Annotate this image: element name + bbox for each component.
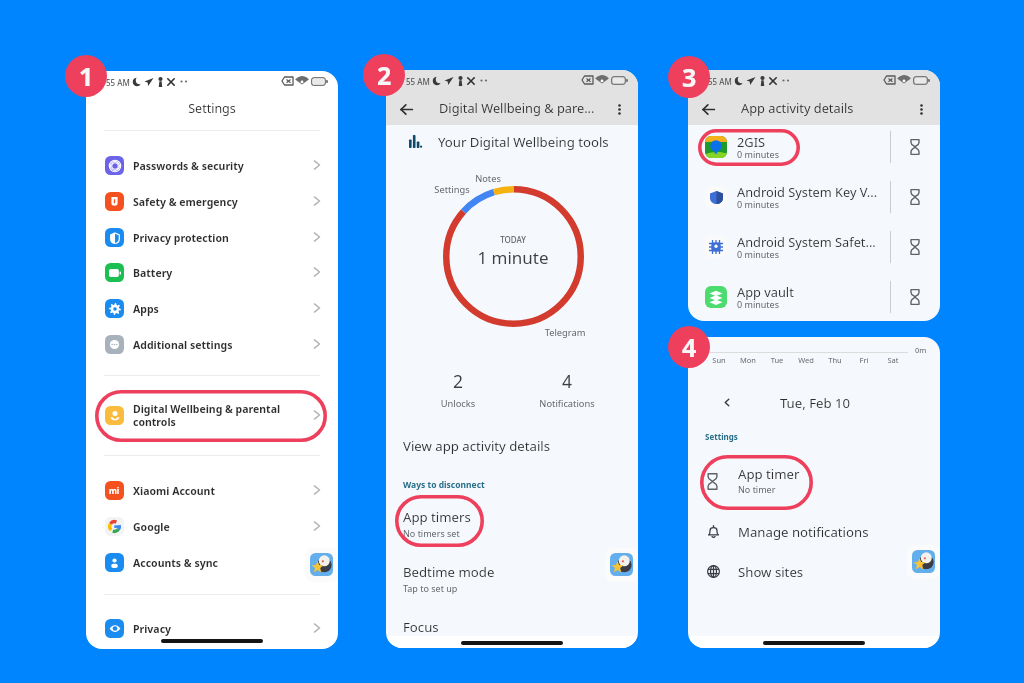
staticText: Tue, Feb 10 bbox=[755, 394, 875, 412]
staticText: 4 bbox=[527, 369, 607, 393]
other: App timer bbox=[910, 139, 920, 155]
staticText: App timers bbox=[403, 508, 471, 526]
button[interactable]: Digital Wellbeing & parental controls bbox=[86, 390, 338, 441]
staticText: View app activity details bbox=[403, 437, 551, 455]
staticText: Accounts & sync bbox=[133, 556, 218, 570]
staticText: Unlocks bbox=[418, 397, 498, 410]
other: App timer bbox=[707, 473, 718, 490]
staticText: Privacy bbox=[133, 622, 172, 636]
button[interactable]: Manage notifications bbox=[688, 517, 940, 549]
button[interactable]: Android System Safet... bbox=[688, 227, 940, 267]
staticText: Focus bbox=[403, 618, 439, 636]
staticText: 2 bbox=[377, 58, 392, 92]
button[interactable]: App timers bbox=[386, 505, 638, 545]
button[interactable]: Bedtime mode bbox=[386, 560, 638, 600]
button[interactable]: Accounts & sync bbox=[86, 548, 338, 576]
staticText: Apps bbox=[133, 302, 159, 316]
button[interactable]: App timer bbox=[688, 463, 940, 501]
staticText: Settings bbox=[705, 431, 738, 442]
staticText: Additional settings bbox=[133, 338, 233, 352]
staticText: TODAY bbox=[463, 234, 563, 245]
other: App timer bbox=[910, 289, 920, 305]
button[interactable]: Safety & emergency bbox=[86, 187, 338, 215]
staticText: Telegram bbox=[535, 326, 595, 339]
button[interactable]: Previous day bbox=[713, 388, 741, 416]
staticText: 3 bbox=[682, 60, 697, 94]
button[interactable]: App vault bbox=[688, 277, 940, 317]
staticText: 0 minutes bbox=[737, 298, 779, 310]
staticText: Your Digital Wellbeing tools bbox=[438, 133, 609, 151]
staticText: No timers set bbox=[403, 527, 460, 539]
button[interactable]: Privacy protection bbox=[86, 223, 338, 251]
staticText: 4 bbox=[682, 330, 697, 364]
staticText: Digital Wellbeing & parental controls bbox=[133, 402, 281, 429]
staticText: Mon bbox=[734, 355, 762, 365]
staticText: Digital Wellbeing & pare... bbox=[439, 99, 595, 116]
staticText: 2 bbox=[418, 369, 498, 393]
staticText: Battery bbox=[133, 266, 173, 280]
staticText: 1 minute bbox=[463, 246, 563, 269]
staticText: Google bbox=[133, 520, 170, 534]
staticText: Show sites bbox=[738, 563, 804, 581]
staticText: Manage notifications bbox=[738, 523, 869, 541]
button[interactable]: Back bbox=[693, 94, 724, 125]
staticText: Wed bbox=[792, 355, 820, 365]
staticText: Bedtime mode bbox=[403, 563, 495, 581]
staticText: Tap to set up bbox=[403, 582, 458, 594]
staticText: Fri bbox=[850, 355, 878, 365]
button[interactable]: Focus bbox=[386, 615, 638, 643]
staticText: Settings bbox=[422, 183, 482, 196]
staticText: 0 minutes bbox=[737, 198, 779, 210]
button[interactable]: Back bbox=[391, 94, 422, 125]
staticText: Settings bbox=[142, 100, 282, 117]
staticText: App vault bbox=[737, 283, 882, 300]
staticText: Notifications bbox=[527, 397, 607, 410]
staticText: Sat bbox=[879, 355, 907, 365]
staticText: Tue bbox=[763, 355, 791, 365]
button[interactable]: More options bbox=[604, 94, 635, 125]
staticText: Privacy protection bbox=[133, 231, 229, 245]
other: App timer bbox=[910, 239, 920, 255]
button[interactable]: Battery bbox=[86, 258, 338, 286]
staticText: 2GIS bbox=[737, 133, 882, 150]
staticText: No timer bbox=[738, 483, 776, 495]
staticText: Ways to disconnect bbox=[403, 479, 485, 491]
staticText: Sun bbox=[705, 355, 733, 365]
staticText: Android System Safet... bbox=[737, 233, 882, 250]
staticText: 0m bbox=[915, 345, 927, 355]
staticText: Thu bbox=[821, 355, 849, 365]
staticText: Xiaomi Account bbox=[133, 484, 216, 498]
button[interactable]: More options bbox=[906, 94, 937, 125]
staticText: Notes bbox=[458, 172, 518, 185]
staticText: App activity details bbox=[741, 99, 854, 116]
staticText: 55 AM bbox=[708, 76, 732, 87]
staticText: App timer bbox=[738, 465, 800, 483]
button[interactable]: View app activity details bbox=[386, 433, 638, 459]
button[interactable]: mi bbox=[86, 476, 338, 504]
button[interactable]: Show sites bbox=[688, 557, 940, 589]
staticText: mi bbox=[109, 485, 120, 496]
button[interactable]: 2GIS bbox=[688, 127, 940, 167]
staticText: 1 bbox=[79, 59, 94, 93]
button[interactable]: Privacy bbox=[86, 614, 338, 642]
button[interactable]: Passwords & security bbox=[86, 151, 338, 179]
button[interactable]: Apps bbox=[86, 294, 338, 322]
other: App timer bbox=[910, 189, 920, 205]
staticText: Passwords & security bbox=[133, 159, 244, 173]
button[interactable]: Additional settings bbox=[86, 330, 338, 358]
button[interactable]: Google bbox=[86, 512, 338, 540]
staticText: 55 AM bbox=[106, 77, 130, 88]
staticText: 0 minutes bbox=[737, 248, 779, 260]
staticText: 0 minutes bbox=[737, 148, 779, 160]
staticText: 55 AM bbox=[406, 76, 430, 87]
staticText: Safety & emergency bbox=[133, 195, 238, 209]
button[interactable]: Android System Key V... bbox=[688, 177, 940, 217]
staticText: Android System Key V... bbox=[737, 183, 882, 200]
